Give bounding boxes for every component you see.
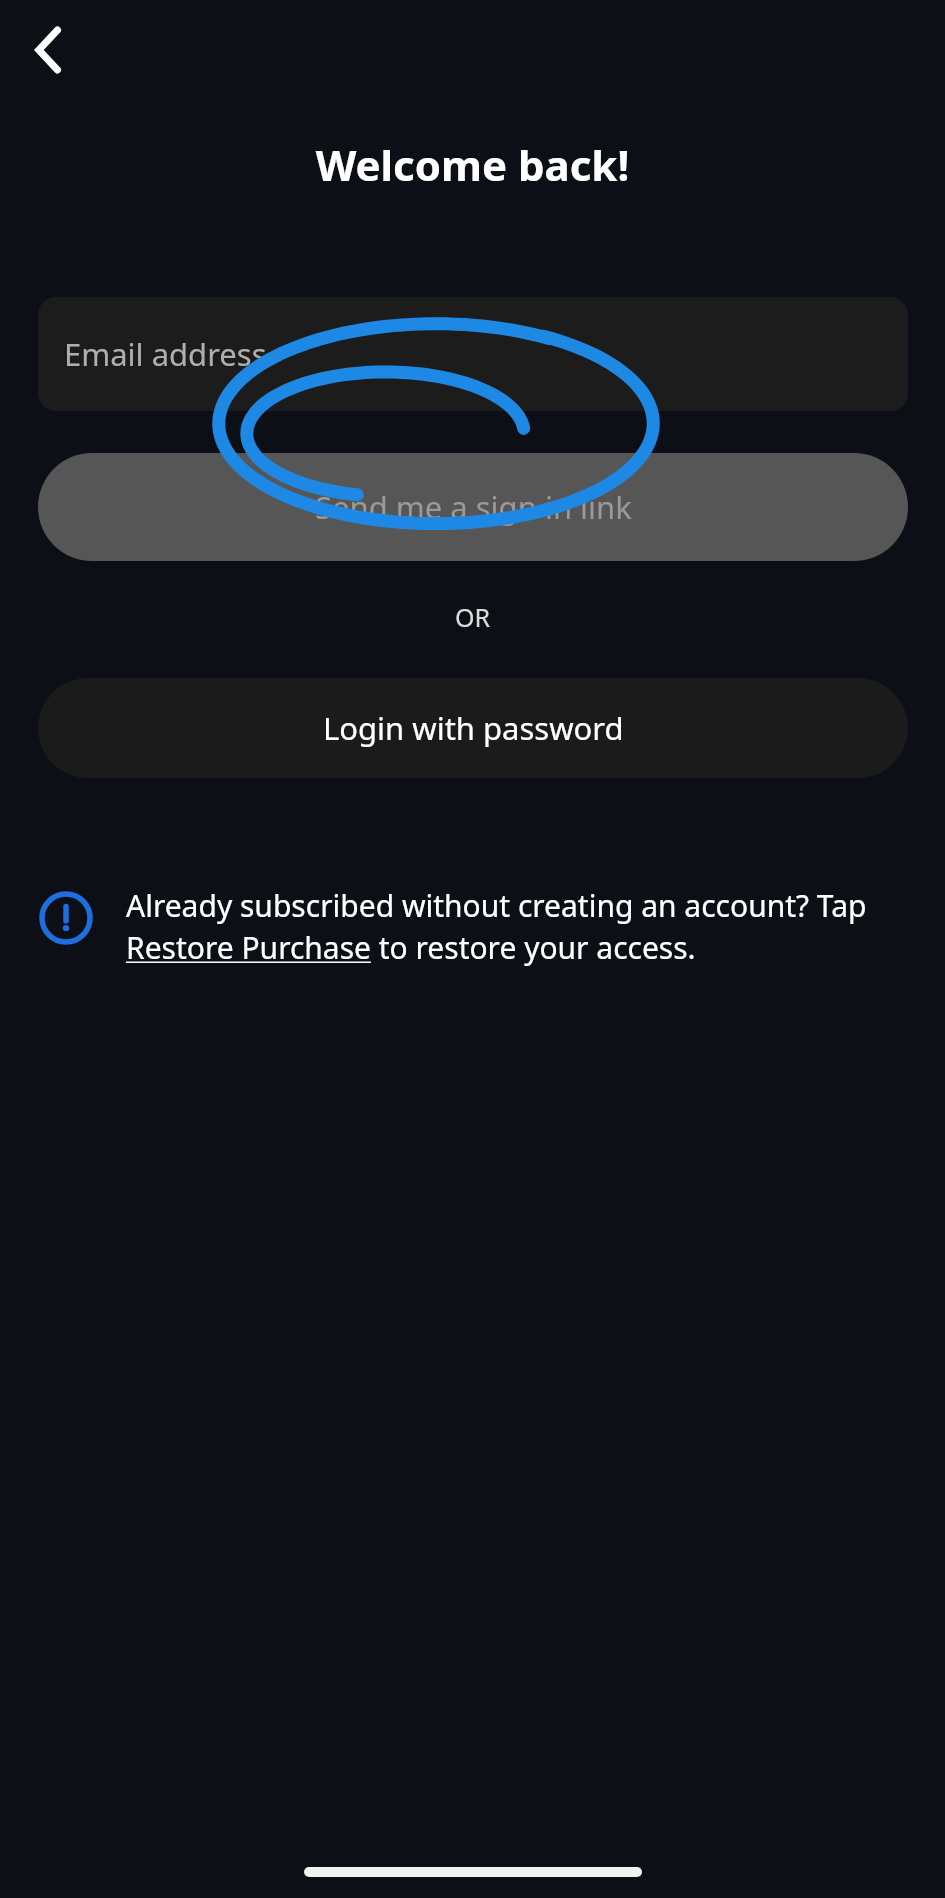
button[interactable]: Email address (38, 297, 908, 411)
staticText: Email address (64, 333, 267, 375)
staticText: Login with password (323, 707, 624, 749)
staticText: Send me a sign in link (315, 486, 632, 528)
staticText: Already subscribed without creating an a… (126, 885, 916, 968)
staticText: OR (0, 600, 945, 634)
button[interactable]: Back (16, 18, 80, 82)
button[interactable]: Send me a sign in link (38, 453, 908, 561)
button[interactable]: Login with password (38, 678, 908, 778)
staticText: Welcome back! (0, 136, 945, 193)
other: Information (38, 890, 94, 946)
